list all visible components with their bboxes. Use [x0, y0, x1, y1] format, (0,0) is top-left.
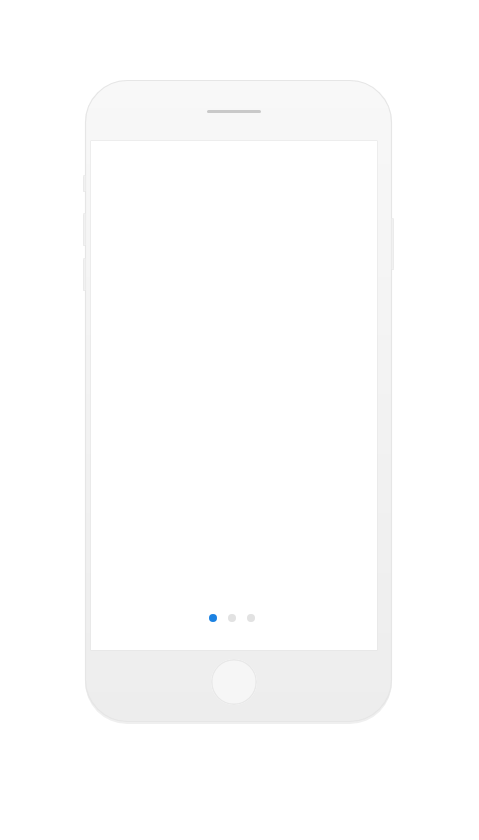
button[interactable]: Page 2: [228, 614, 236, 622]
button[interactable]: Page 3: [247, 614, 255, 622]
button[interactable]: Volume up: [83, 213, 86, 246]
button[interactable]: Page 1: [209, 614, 217, 622]
button[interactable]: Power: [391, 218, 394, 270]
button[interactable]: Home: [211, 659, 257, 705]
button[interactable]: Volume down: [83, 258, 86, 291]
button[interactable]: Silent switch: [83, 175, 86, 192]
